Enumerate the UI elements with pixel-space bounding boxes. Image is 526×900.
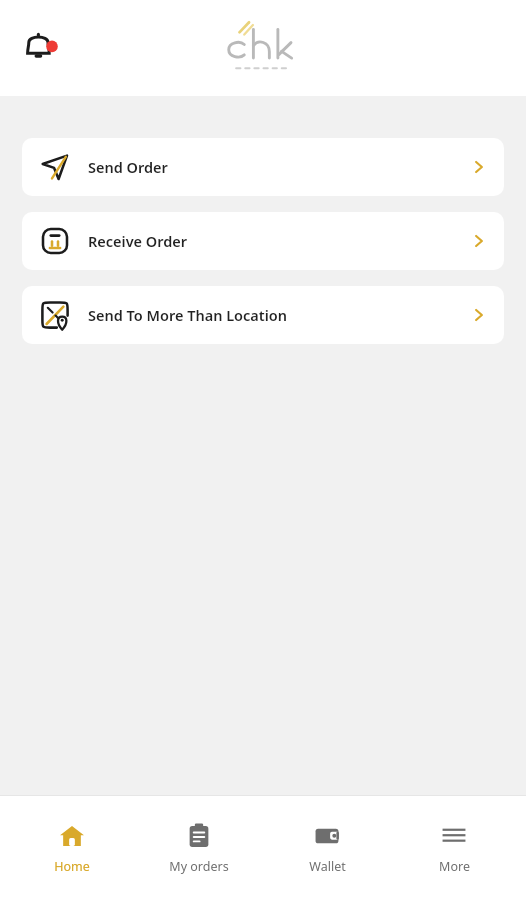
staticText: My orders — [169, 858, 229, 875]
button[interactable]: My orders — [144, 816, 254, 881]
button[interactable]: Home — [17, 816, 127, 881]
button[interactable]: Wallet — [272, 816, 382, 881]
button[interactable]: More — [399, 816, 509, 881]
staticText: Send To More Than Location — [88, 305, 287, 325]
staticText: Wallet — [309, 858, 346, 875]
button[interactable]: Send Order — [22, 138, 504, 196]
staticText: Home — [54, 858, 90, 875]
staticText: Receive Order — [88, 231, 188, 251]
staticText: Send Order — [88, 157, 168, 177]
button[interactable]: Send To More Than Location — [22, 286, 504, 344]
staticText: More — [439, 858, 470, 875]
button[interactable]: Notifications — [14, 22, 66, 74]
button[interactable]: Receive Order — [22, 212, 504, 270]
